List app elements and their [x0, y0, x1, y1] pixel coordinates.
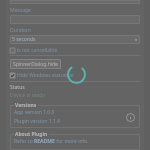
staticText: Message — [10, 7, 31, 14]
button[interactable]: SpinnerDialog.hide — [10, 59, 61, 69]
button[interactable]: Hide Windows statusbar — [10, 71, 140, 79]
staticText: App version 1.0.0 — [14, 109, 55, 116]
staticText: Status — [10, 84, 25, 91]
staticText: SpinnerDialog.hide — [13, 61, 58, 68]
staticText: Hide Windows statusbar — [17, 72, 75, 79]
staticText: Versions — [15, 102, 37, 109]
staticText: for more info. — [55, 138, 89, 145]
button[interactable] — [10, 0, 140, 4]
button[interactable]: README — [34, 138, 55, 145]
staticText: Plugin version 1.1.4 — [14, 118, 60, 125]
button[interactable]: 5 seconds — [10, 35, 140, 44]
button[interactable]: Info — [124, 111, 136, 123]
button[interactable] — [10, 15, 140, 24]
button[interactable]: is not cancellable — [10, 46, 140, 54]
staticText: 5 seconds — [12, 36, 134, 43]
staticText: Device is ready — [10, 92, 45, 99]
staticText: About Plugin — [15, 131, 48, 138]
staticText: is not cancellable — [17, 47, 58, 54]
staticText: Duration — [10, 27, 31, 34]
staticText: Refer to — [14, 138, 34, 145]
